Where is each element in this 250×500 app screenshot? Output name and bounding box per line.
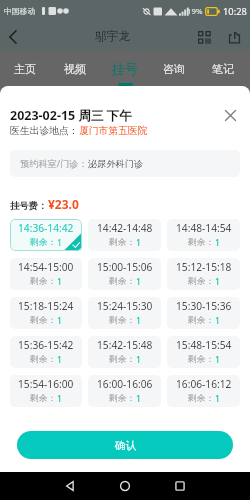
staticText: 中国移动: [4, 6, 36, 16]
staticText: 2023-02-15 周三 下午: [10, 107, 132, 124]
staticText: 16:06-16:12: [176, 377, 232, 391]
button[interactable]: Share: [222, 25, 246, 49]
staticText: 1: [136, 393, 142, 405]
button[interactable]: Back: [50, 472, 90, 500]
staticText: 15:18-15:24: [18, 299, 74, 313]
staticText: 1: [57, 237, 63, 249]
staticText: 14:48-14:54: [176, 221, 232, 235]
button[interactable]: 挂号: [100, 51, 149, 94]
staticText: 1: [57, 354, 63, 366]
staticText: 15:42-15:48: [97, 338, 153, 352]
button[interactable]: 15:24-15:30: [88, 297, 161, 329]
staticText: 1: [57, 315, 63, 327]
staticText: 剩余：: [188, 393, 215, 404]
staticText: 剩余：: [30, 393, 57, 404]
staticText: 剩余：: [30, 276, 57, 287]
button[interactable]: 14:36-14:42: [10, 219, 82, 251]
staticText: 16:00-16:06: [97, 377, 153, 391]
staticText: 咨询: [163, 62, 185, 76]
staticText: 剩余：: [188, 276, 215, 287]
button[interactable]: 15:30-15:36: [167, 297, 240, 329]
button[interactable]: 15:36-15:42: [10, 336, 82, 368]
staticText: 1: [136, 354, 142, 366]
staticText: 确认: [115, 439, 136, 452]
staticText: 厦门市第五医院: [79, 125, 148, 137]
button[interactable]: 15:18-15:24: [10, 297, 82, 329]
staticText: 15:54-16:00: [18, 377, 74, 391]
staticText: 1: [215, 276, 221, 288]
button[interactable]: Back: [0, 24, 26, 50]
button[interactable]: 14:42-14:48: [88, 219, 161, 251]
button[interactable]: Home: [105, 472, 145, 500]
staticText: 15:00-15:06: [97, 260, 153, 274]
staticText: 15:48-15:54: [176, 338, 232, 352]
staticText: 剩余：: [109, 276, 136, 287]
staticText: 剩余：: [109, 393, 136, 404]
staticText: 挂号: [111, 61, 139, 78]
staticText: 1: [57, 276, 63, 288]
staticText: 1: [215, 237, 221, 249]
staticText: 医生出诊地点：: [10, 125, 79, 137]
button[interactable]: 笔记: [198, 51, 247, 94]
staticText: 主页: [14, 62, 36, 76]
button[interactable]: 14:54-15:00: [10, 258, 82, 290]
staticText: 1: [215, 354, 221, 366]
button[interactable]: 15:54-16:00: [10, 375, 82, 407]
button[interactable]: 主页: [0, 51, 50, 94]
staticText: 10:28: [223, 5, 247, 18]
button[interactable]: 16:06-16:12: [167, 375, 240, 407]
button[interactable]: 视频: [50, 51, 100, 94]
staticText: 14:36-14:42: [18, 221, 74, 235]
staticText: 15:24-15:30: [97, 299, 153, 313]
staticText: 15:12-15:18: [176, 260, 232, 274]
staticText: 剩余：: [30, 354, 57, 365]
staticText: 1: [136, 315, 142, 327]
staticText: 14:54-15:00: [18, 260, 74, 274]
staticText: 挂号费：: [10, 200, 48, 212]
staticText: 1: [215, 393, 221, 405]
button[interactable]: Close: [220, 106, 240, 124]
staticText: 泌尿外科门诊: [88, 158, 144, 170]
staticText: 19%: [187, 6, 203, 17]
staticText: 剩余：: [30, 237, 57, 248]
staticText: 剩余：: [109, 237, 136, 248]
staticText: 剩余：: [109, 354, 136, 365]
staticText: 15:30-15:36: [176, 299, 232, 313]
staticText: 1: [215, 315, 221, 327]
staticText: 1: [57, 393, 63, 405]
staticText: 剩余：: [30, 315, 57, 326]
button[interactable]: 15:12-15:18: [167, 258, 240, 290]
staticText: 剩余：: [188, 354, 215, 365]
button[interactable]: 14:48-14:54: [167, 219, 240, 251]
staticText: 视频: [64, 62, 86, 76]
button[interactable]: 15:42-15:48: [88, 336, 161, 368]
staticText: 剩余：: [188, 237, 215, 248]
staticText: 邬宇龙: [95, 29, 131, 44]
staticText: 1: [136, 237, 142, 249]
staticText: 剩余：: [188, 315, 215, 326]
button[interactable]: 15:48-15:54: [167, 336, 240, 368]
button[interactable]: 咨询: [149, 51, 198, 94]
staticText: 1: [136, 276, 142, 288]
staticText: 15:36-15:42: [18, 338, 74, 352]
button[interactable]: Scan QR code: [192, 25, 216, 49]
button[interactable]: 16:00-16:06: [88, 375, 161, 407]
button[interactable]: Recent apps: [160, 472, 200, 500]
staticText: 笔记: [212, 62, 234, 76]
staticText: 预约科室/门诊：: [20, 157, 88, 170]
staticText: 14:42-14:48: [97, 221, 153, 235]
button[interactable]: 预约科室/门诊：: [10, 150, 240, 177]
staticText: 剩余：: [109, 315, 136, 326]
button[interactable]: 确认: [17, 431, 233, 459]
staticText: ¥23.0: [48, 196, 79, 212]
button[interactable]: 15:00-15:06: [88, 258, 161, 290]
